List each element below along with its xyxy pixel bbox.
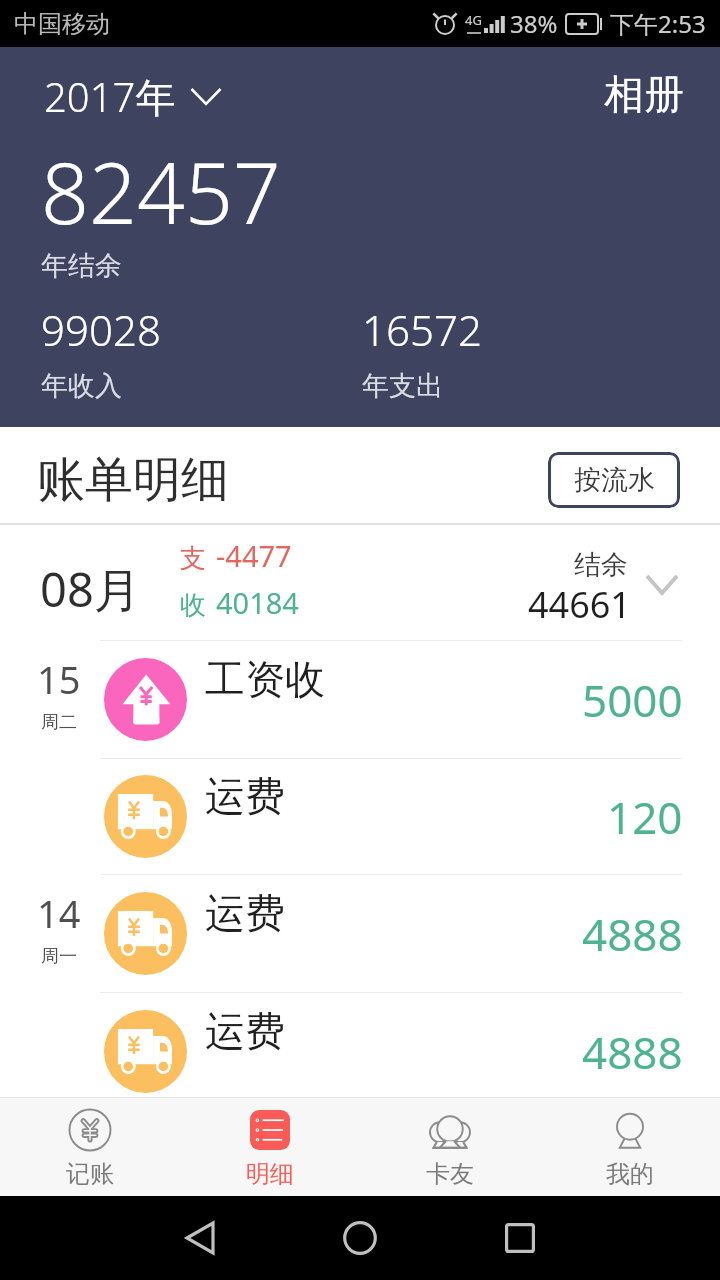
button[interactable]: 卡友 bbox=[360, 1098, 540, 1196]
button[interactable]: Home bbox=[332, 1210, 388, 1266]
button[interactable]: 2017年 bbox=[34, 61, 232, 132]
staticText: -4477 bbox=[216, 536, 292, 575]
staticText: 我的 bbox=[606, 1159, 654, 1189]
staticText: 周二 bbox=[41, 711, 77, 734]
staticText: 运费 bbox=[205, 771, 285, 821]
staticText: 16572 bbox=[362, 301, 482, 358]
button[interactable]: 我的 bbox=[540, 1098, 720, 1196]
button[interactable]: 08月 bbox=[0, 525, 720, 640]
staticText: 相册 bbox=[604, 69, 684, 119]
button[interactable]: 15 bbox=[0, 641, 720, 758]
staticText: 卡友 bbox=[426, 1159, 474, 1189]
staticText: 4888 bbox=[582, 1022, 683, 1082]
staticText: 下午2:53 bbox=[610, 7, 706, 40]
button[interactable]: 相册 bbox=[596, 63, 692, 125]
button[interactable]: Recent apps bbox=[492, 1210, 548, 1266]
staticText: 120 bbox=[607, 787, 683, 847]
staticText: 运费 bbox=[205, 1006, 285, 1056]
button[interactable]: 记账 bbox=[0, 1098, 180, 1196]
staticText: 4G bbox=[465, 11, 482, 29]
staticText: 4888 bbox=[582, 904, 683, 964]
staticText: 记账 bbox=[66, 1159, 114, 1189]
staticText: 结余 bbox=[574, 548, 628, 582]
staticText: 明细 bbox=[246, 1159, 294, 1189]
button[interactable]: 14 bbox=[0, 875, 720, 992]
staticText: 99028 bbox=[41, 301, 161, 358]
button[interactable]: 运费 bbox=[0, 759, 720, 874]
staticText: 38% bbox=[510, 7, 558, 40]
button[interactable]: 按流水 bbox=[548, 452, 680, 508]
staticText: 中国移动 bbox=[14, 9, 110, 39]
staticText: 运费 bbox=[205, 888, 285, 938]
staticText: 收 bbox=[180, 589, 206, 622]
staticText: 15 bbox=[37, 653, 81, 705]
staticText: 14 bbox=[37, 887, 81, 939]
other: Expand month bbox=[645, 574, 679, 595]
staticText: 年收入 bbox=[41, 369, 122, 403]
staticText: 44661 bbox=[528, 580, 631, 629]
button[interactable]: 运费 bbox=[0, 993, 720, 1110]
staticText: 年结余 bbox=[41, 249, 122, 283]
button[interactable]: 明细 bbox=[180, 1098, 360, 1196]
button[interactable]: Back bbox=[172, 1210, 228, 1266]
staticText: 82457 bbox=[41, 134, 281, 248]
staticText: 2017年 bbox=[44, 69, 176, 124]
staticText: 账单明细 bbox=[37, 450, 229, 510]
staticText: 支 bbox=[180, 542, 206, 575]
staticText: 5000 bbox=[582, 670, 683, 730]
staticText: 工资收 bbox=[205, 654, 325, 704]
staticText: 40184 bbox=[216, 583, 299, 622]
staticText: 08月 bbox=[40, 557, 141, 621]
staticText: 周一 bbox=[41, 945, 77, 968]
staticText: 年支出 bbox=[362, 369, 443, 403]
staticText: 按流水 bbox=[574, 463, 655, 497]
